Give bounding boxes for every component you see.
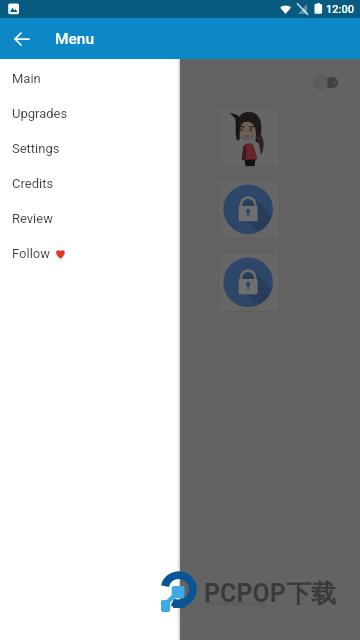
button[interactable]: Credits xyxy=(0,166,180,201)
button[interactable]: Character xyxy=(218,107,280,167)
staticText: Follow xyxy=(12,246,50,261)
staticText: PCPOP下载 xyxy=(204,578,336,609)
button[interactable]: Back xyxy=(6,23,38,55)
button[interactable]: Toggle xyxy=(313,75,339,90)
button[interactable]: Upgrades xyxy=(0,96,180,131)
staticText: PCPOP Download xyxy=(206,599,266,608)
staticText: Review xyxy=(12,211,53,226)
staticText: Settings xyxy=(12,141,60,156)
staticText: Menu xyxy=(55,30,95,48)
staticText: Main xyxy=(12,71,41,86)
button[interactable]: Locked character 2 xyxy=(218,252,280,312)
button[interactable]: Locked character 1 xyxy=(218,179,280,239)
staticText: Credits xyxy=(12,176,54,191)
button[interactable]: Main xyxy=(0,61,180,96)
staticText: 12:00 xyxy=(326,3,354,16)
button[interactable]: Follow xyxy=(0,236,180,271)
staticText: Upgrades xyxy=(12,106,68,121)
button[interactable]: Review xyxy=(0,201,180,236)
button[interactable]: Settings xyxy=(0,131,180,166)
